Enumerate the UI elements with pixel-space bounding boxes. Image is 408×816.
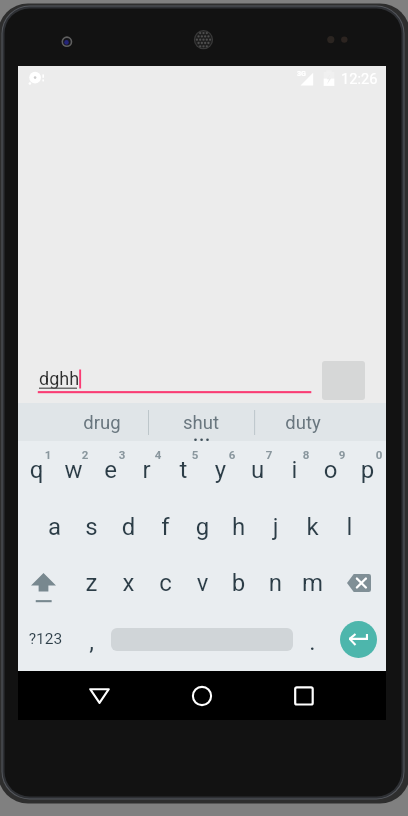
button[interactable]: z [73, 554, 110, 611]
button[interactable]: i [276, 441, 313, 498]
button[interactable]: g [184, 498, 221, 555]
button[interactable]: a [36, 498, 73, 555]
button[interactable]: x [110, 554, 147, 611]
staticText: 9 [335, 448, 349, 461]
button[interactable]: Recents [276, 671, 332, 720]
staticText: c [147, 569, 184, 597]
staticText: q [18, 456, 55, 484]
staticText: s [73, 513, 110, 541]
button[interactable]: b [220, 554, 257, 611]
staticText: b [220, 569, 257, 597]
button[interactable]: u [239, 441, 276, 498]
staticText: j [257, 513, 294, 541]
staticText: 12:26 [341, 70, 378, 87]
staticText: o [312, 456, 349, 484]
staticText: 1 [41, 448, 55, 461]
button[interactable]: shut [156, 403, 246, 441]
button[interactable]: n [257, 554, 294, 611]
staticText: f [147, 513, 184, 541]
button[interactable]: Home [174, 671, 230, 720]
button[interactable]: c [147, 554, 184, 611]
button[interactable]: f [147, 498, 184, 555]
staticText: e [92, 456, 129, 484]
button[interactable]: v [184, 554, 221, 611]
button[interactable]: r [128, 441, 165, 498]
button[interactable]: e [92, 441, 129, 498]
staticText: ?123 [18, 630, 73, 648]
staticText: shut [156, 412, 246, 434]
staticText: dghh [39, 368, 80, 389]
button[interactable]: ?123 [18, 611, 73, 668]
staticText: d [110, 513, 147, 541]
button[interactable]: l [331, 498, 368, 555]
button[interactable]: h [220, 498, 257, 555]
staticText: h [220, 513, 257, 541]
button[interactable]: duty [258, 403, 348, 441]
button[interactable]: q [18, 441, 55, 498]
staticText: i [276, 456, 313, 484]
staticText: 2 [78, 448, 92, 461]
button[interactable]: y [202, 441, 239, 498]
staticText: u [239, 456, 276, 484]
staticText: k [294, 513, 331, 541]
staticText: 8 [299, 448, 313, 461]
staticText: 6 [225, 448, 239, 461]
staticText: m [294, 569, 331, 597]
staticText: p [349, 456, 386, 484]
button[interactable]: Comma [73, 611, 110, 668]
button[interactable]: s [73, 498, 110, 555]
staticText: g [184, 513, 221, 541]
button[interactable]: o [312, 441, 349, 498]
button[interactable]: k [294, 498, 331, 555]
button[interactable]: Enter [331, 611, 386, 668]
staticText: z [73, 569, 110, 597]
staticText: 0 [372, 448, 386, 461]
staticText: t [165, 456, 202, 484]
button[interactable]: p [349, 441, 386, 498]
button[interactable]: d [110, 498, 147, 555]
staticText: y [202, 456, 239, 484]
button[interactable]: Backspace [331, 554, 386, 611]
button[interactable]: m [294, 554, 331, 611]
button[interactable]: Shift [18, 554, 73, 611]
staticText: 4 [151, 448, 165, 461]
button[interactable]: drug [57, 403, 147, 441]
staticText: , [73, 628, 110, 656]
button[interactable]: Period [294, 611, 331, 668]
staticText: . [294, 628, 331, 656]
staticText: duty [258, 412, 348, 434]
button[interactable]: Back [71, 671, 127, 720]
staticText: r [128, 456, 165, 484]
staticText: l [331, 513, 368, 541]
staticText: v [184, 569, 221, 597]
button[interactable]: t [165, 441, 202, 498]
staticText: w [55, 456, 92, 484]
staticText: a [36, 513, 73, 541]
button[interactable]: w [55, 441, 92, 498]
button[interactable]: Space [110, 611, 294, 668]
staticText: 3G [297, 69, 307, 77]
staticText: n [257, 569, 294, 597]
staticText: x [110, 569, 147, 597]
staticText: 7 [262, 448, 276, 461]
staticText: 3 [115, 448, 129, 461]
button[interactable]: j [257, 498, 294, 555]
staticText: drug [57, 412, 147, 434]
staticText: 5 [188, 448, 202, 461]
